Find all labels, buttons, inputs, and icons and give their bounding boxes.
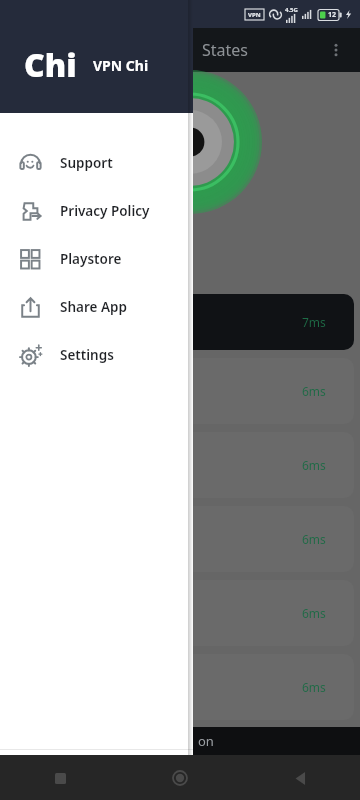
- staticText: Support: [60, 154, 113, 172]
- staticText: 6ms: [302, 383, 326, 399]
- staticText: States: [202, 39, 249, 61]
- staticText: 6ms: [302, 457, 326, 473]
- button[interactable]: 6ms: [6, 358, 354, 424]
- staticText: 4.5G: [285, 6, 298, 14]
- staticText: Share App: [60, 298, 127, 316]
- staticText: VPN: [248, 11, 261, 19]
- button[interactable]: 6ms: [6, 654, 354, 720]
- button[interactable]: Recent apps: [40, 758, 80, 798]
- staticText: VPN Chi: [93, 56, 149, 75]
- staticText: 6ms: [302, 531, 326, 547]
- button[interactable]: Support: [0, 139, 193, 187]
- button[interactable]: 6ms: [6, 728, 354, 794]
- staticText: Playstore: [60, 250, 122, 268]
- button[interactable]: More options: [320, 34, 352, 66]
- staticText: Settings: [60, 346, 114, 364]
- staticText: v1.0.0 (VpnChi-core): [38, 767, 155, 784]
- button[interactable]: Settings: [0, 331, 193, 379]
- button[interactable]: 7ms: [6, 294, 354, 350]
- button[interactable]: Back: [280, 758, 320, 798]
- button[interactable]: 6ms: [6, 580, 354, 646]
- button[interactable]: 6ms: [6, 432, 354, 498]
- staticText: 7ms: [302, 314, 326, 330]
- button[interactable]: 6ms: [6, 506, 354, 572]
- staticText: 12: [328, 10, 337, 20]
- staticText: 6ms: [302, 679, 326, 695]
- button[interactable]: Home: [160, 758, 200, 798]
- staticText: Chi: [24, 43, 77, 87]
- staticText: 6ms: [302, 753, 326, 769]
- staticText: 6ms: [302, 605, 326, 621]
- button[interactable]: Share App: [0, 283, 193, 331]
- button[interactable]: Playstore: [0, 235, 193, 283]
- staticText: Privacy Policy: [60, 202, 150, 220]
- staticText: on: [198, 732, 214, 750]
- button[interactable]: Privacy Policy: [0, 187, 193, 235]
